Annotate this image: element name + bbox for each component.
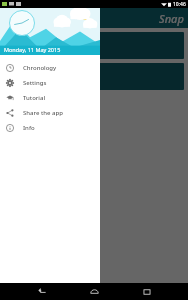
staticText: Every day xyxy=(11,83,34,90)
staticText: Monday, 11 May 2015 xyxy=(4,46,61,53)
button[interactable]: Share the app xyxy=(0,105,100,120)
button[interactable]: Home xyxy=(83,283,105,300)
staticText: Every day xyxy=(11,52,34,59)
button[interactable]: Open navigation drawer xyxy=(4,11,18,25)
button[interactable]: Tutorial xyxy=(0,90,100,105)
button[interactable]: Recent apps xyxy=(136,283,158,300)
button[interactable]: Chronology xyxy=(0,60,100,75)
staticText: Settings xyxy=(23,79,47,87)
staticText: 10:46 xyxy=(173,1,186,8)
button[interactable]: 10:48 xyxy=(4,63,184,90)
button[interactable]: Info xyxy=(0,120,100,135)
staticText: Snap xyxy=(159,11,184,26)
staticText: Info xyxy=(23,124,35,132)
staticText: 10:48 xyxy=(11,64,45,82)
staticText: Chronology xyxy=(23,64,57,72)
button[interactable]: 10:46 xyxy=(4,32,184,59)
staticText: 10:46 xyxy=(11,33,45,51)
staticText: Tutorial xyxy=(23,94,46,102)
button[interactable]: Settings xyxy=(0,75,100,90)
button[interactable]: Back xyxy=(31,283,53,300)
staticText: Share the app xyxy=(23,109,63,117)
